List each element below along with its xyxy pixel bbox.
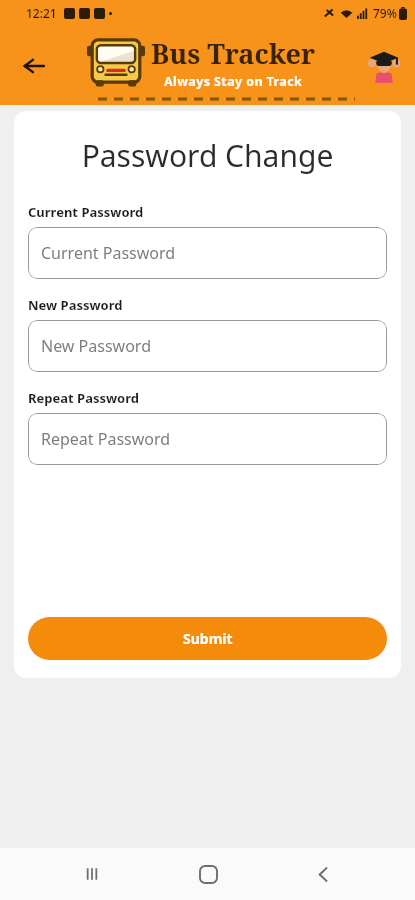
staticText: Repeat Password: [28, 389, 140, 407]
staticText: Repeat Password: [41, 428, 171, 450]
staticText: New Password: [41, 335, 151, 357]
staticText: Bus Tracker: [151, 35, 316, 72]
button[interactable]: Back: [12, 44, 56, 88]
staticText: Current Password: [28, 203, 144, 221]
staticText: New Password: [28, 296, 123, 314]
staticText: 12:21: [26, 5, 57, 21]
button[interactable]: Profile: [361, 43, 407, 89]
button[interactable]: Repeat Password: [28, 413, 387, 465]
staticText: Current Password: [41, 242, 176, 264]
button[interactable]: Home: [184, 850, 232, 898]
staticText: Submit: [183, 629, 233, 648]
button[interactable]: Current Password: [28, 227, 387, 279]
staticText: Password Change: [28, 135, 387, 176]
staticText: Always Stay on Track: [164, 73, 303, 90]
button[interactable]: Recent apps: [68, 850, 116, 898]
button[interactable]: New Password: [28, 320, 387, 372]
staticText: 79%: [373, 5, 397, 21]
button[interactable]: Back: [299, 850, 347, 898]
button[interactable]: Submit: [28, 617, 387, 660]
